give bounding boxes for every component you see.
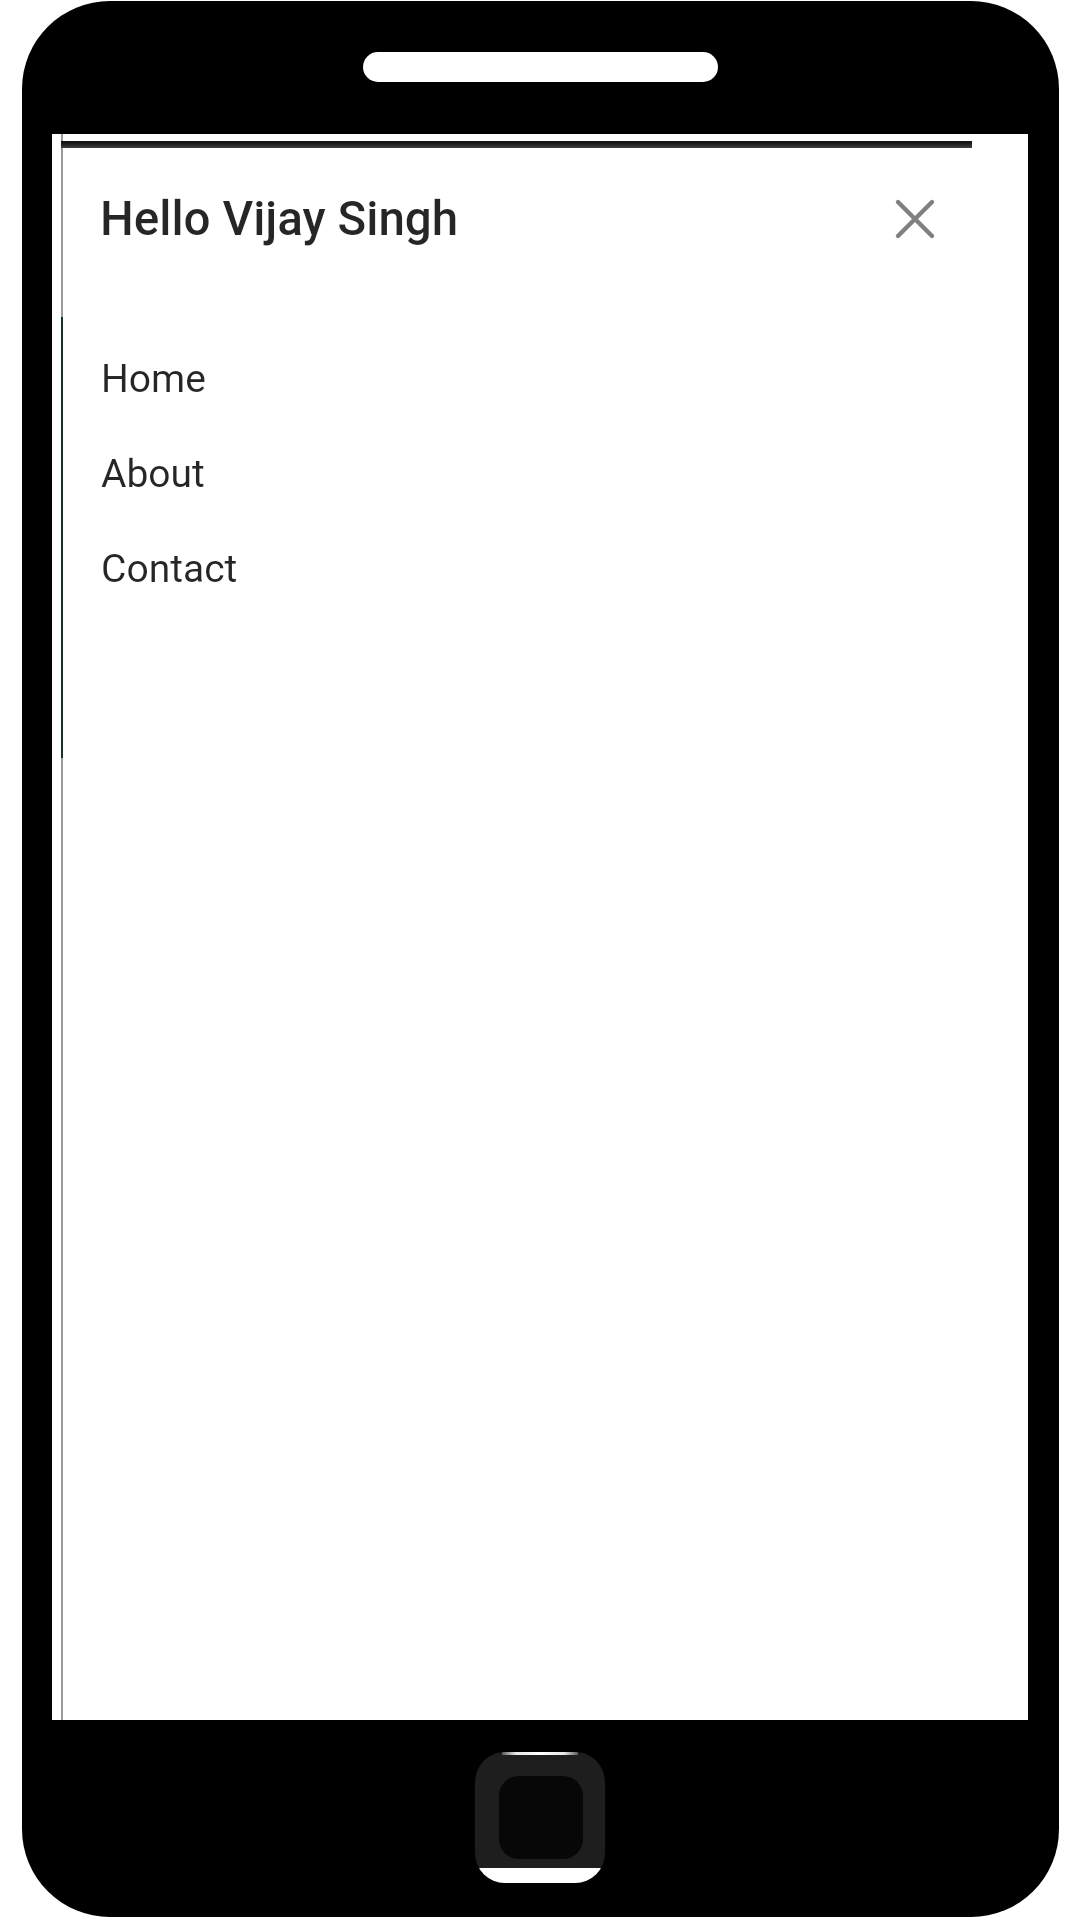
button[interactable]: About xyxy=(62,451,382,511)
button[interactable]: Home button xyxy=(475,1752,605,1883)
staticText: Contact xyxy=(101,546,238,592)
button[interactable]: Home xyxy=(62,356,382,416)
staticText: Hello Vijay Singh xyxy=(100,191,459,247)
staticText: About xyxy=(101,451,205,497)
staticText: Home xyxy=(101,356,206,402)
button[interactable]: Contact xyxy=(62,546,382,606)
button[interactable]: Close menu xyxy=(855,159,975,279)
